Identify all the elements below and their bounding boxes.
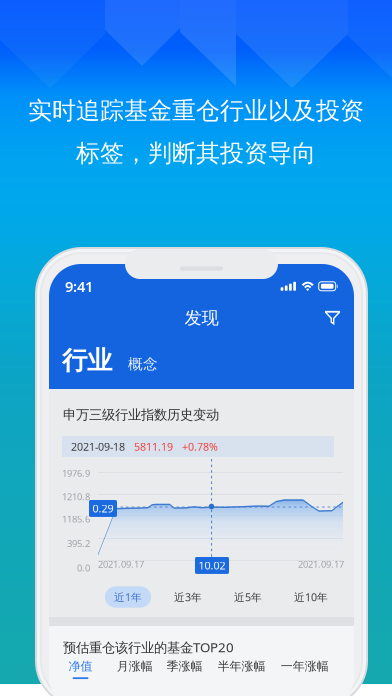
staticText: 月涨幅 (117, 659, 153, 674)
staticText: 概念 (128, 355, 158, 373)
staticText: 行业 (62, 345, 112, 376)
staticText: 0.29 (92, 501, 113, 516)
staticText: 近5年 (234, 590, 262, 604)
staticText: 一年涨幅 (281, 659, 329, 674)
staticText: 10.02 (198, 558, 225, 573)
staticText: 9:41 (65, 276, 93, 296)
staticText: 实时追踪基金重仓行业以及投资 (28, 96, 364, 125)
staticText: 2021-09-18 (71, 439, 125, 454)
button[interactable]: 近5年 (225, 586, 271, 608)
button[interactable]: Filter (325, 310, 340, 325)
staticText: 1210.8 (62, 490, 90, 503)
staticText: 395.2 (67, 537, 90, 550)
staticText: +0.78% (182, 439, 218, 454)
staticText: 季涨幅 (166, 659, 202, 674)
button[interactable]: 一年涨幅 (281, 659, 329, 674)
button[interactable]: 行业 (62, 345, 112, 376)
staticText: 近10年 (294, 590, 328, 604)
button[interactable]: 近1年 (105, 586, 151, 608)
staticText: 近1年 (114, 590, 142, 604)
button[interactable]: 净值 (68, 659, 92, 679)
staticText: 预估重仓该行业的基金TOP20 (63, 638, 234, 656)
staticText: 0.0 (77, 562, 90, 574)
button[interactable]: 半年涨幅 (217, 659, 265, 674)
staticText: 发现 (184, 307, 218, 329)
staticText: 半年涨幅 (217, 659, 265, 674)
button[interactable]: 季涨幅 (166, 659, 202, 674)
button[interactable]: 概念 (128, 355, 158, 376)
staticText: 2021.09.17 (98, 558, 144, 570)
staticText: 1185.6 (62, 513, 90, 525)
staticText: 5811.19 (134, 439, 173, 454)
staticText: 近3年 (174, 590, 202, 604)
button[interactable]: 月涨幅 (117, 659, 153, 674)
staticText: 申万三级行业指数历史变动 (63, 407, 219, 423)
staticText: 净值 (68, 659, 92, 674)
staticText: 2021.09.17 (298, 558, 344, 570)
button[interactable]: 近3年 (165, 586, 211, 608)
staticText: 标签，判断其投资导向 (76, 138, 316, 168)
staticText: 1976.9 (62, 467, 90, 479)
button[interactable]: 近10年 (285, 586, 337, 608)
